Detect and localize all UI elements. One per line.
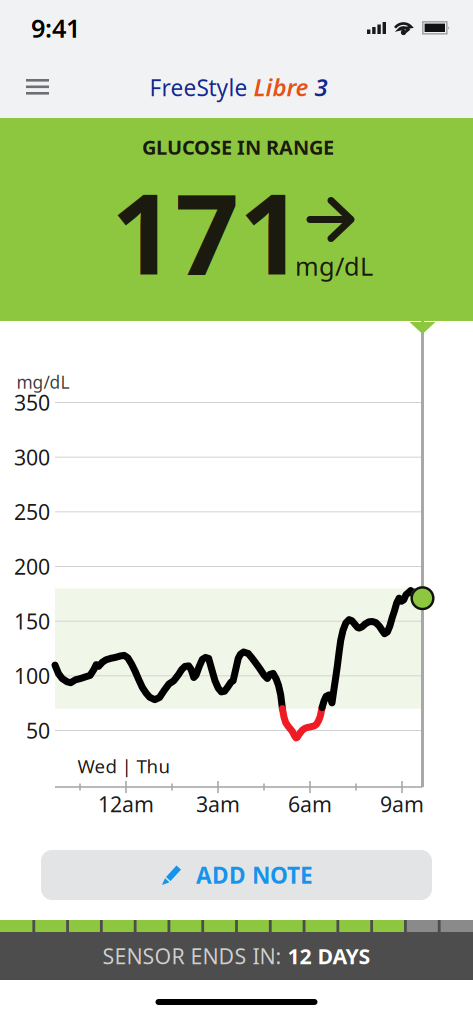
staticText: mg/dL [295,249,373,283]
staticText: GLUCOSE IN RANGE [142,134,334,160]
staticText: SENSOR ENDS IN: [102,942,287,970]
staticText: mg/dL [16,370,69,393]
staticText: 12am [98,790,154,818]
staticText: 50 [26,716,50,745]
staticText: 171 [111,157,303,305]
staticText: 250 [14,498,50,526]
staticText: ADD NOTE [196,860,313,890]
staticText: 350 [14,388,50,417]
button[interactable]: ADD NOTE [41,850,432,900]
staticText: 3 [314,71,327,103]
staticText: 150 [14,607,50,635]
staticText: 200 [14,552,50,581]
staticText: 3am [196,790,240,818]
button[interactable]: Menu [0,56,75,118]
staticText: 9am [380,790,424,818]
staticText: 6am [288,790,332,818]
staticText: Wed | Thu [77,754,170,778]
staticText: Libre [253,71,308,103]
staticText: 9:41 [31,11,80,45]
staticText: 12 DAYS [287,942,370,970]
staticText: 300 [14,443,50,471]
staticText: 100 [14,662,50,690]
staticText: FreeStyle [149,72,247,103]
